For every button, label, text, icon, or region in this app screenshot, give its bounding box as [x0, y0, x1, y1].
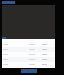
button[interactable] [2, 62, 55, 67]
button[interactable] [2, 57, 55, 62]
button[interactable] [2, 42, 55, 47]
button[interactable] [2, 52, 55, 57]
button[interactable] [2, 47, 55, 52]
